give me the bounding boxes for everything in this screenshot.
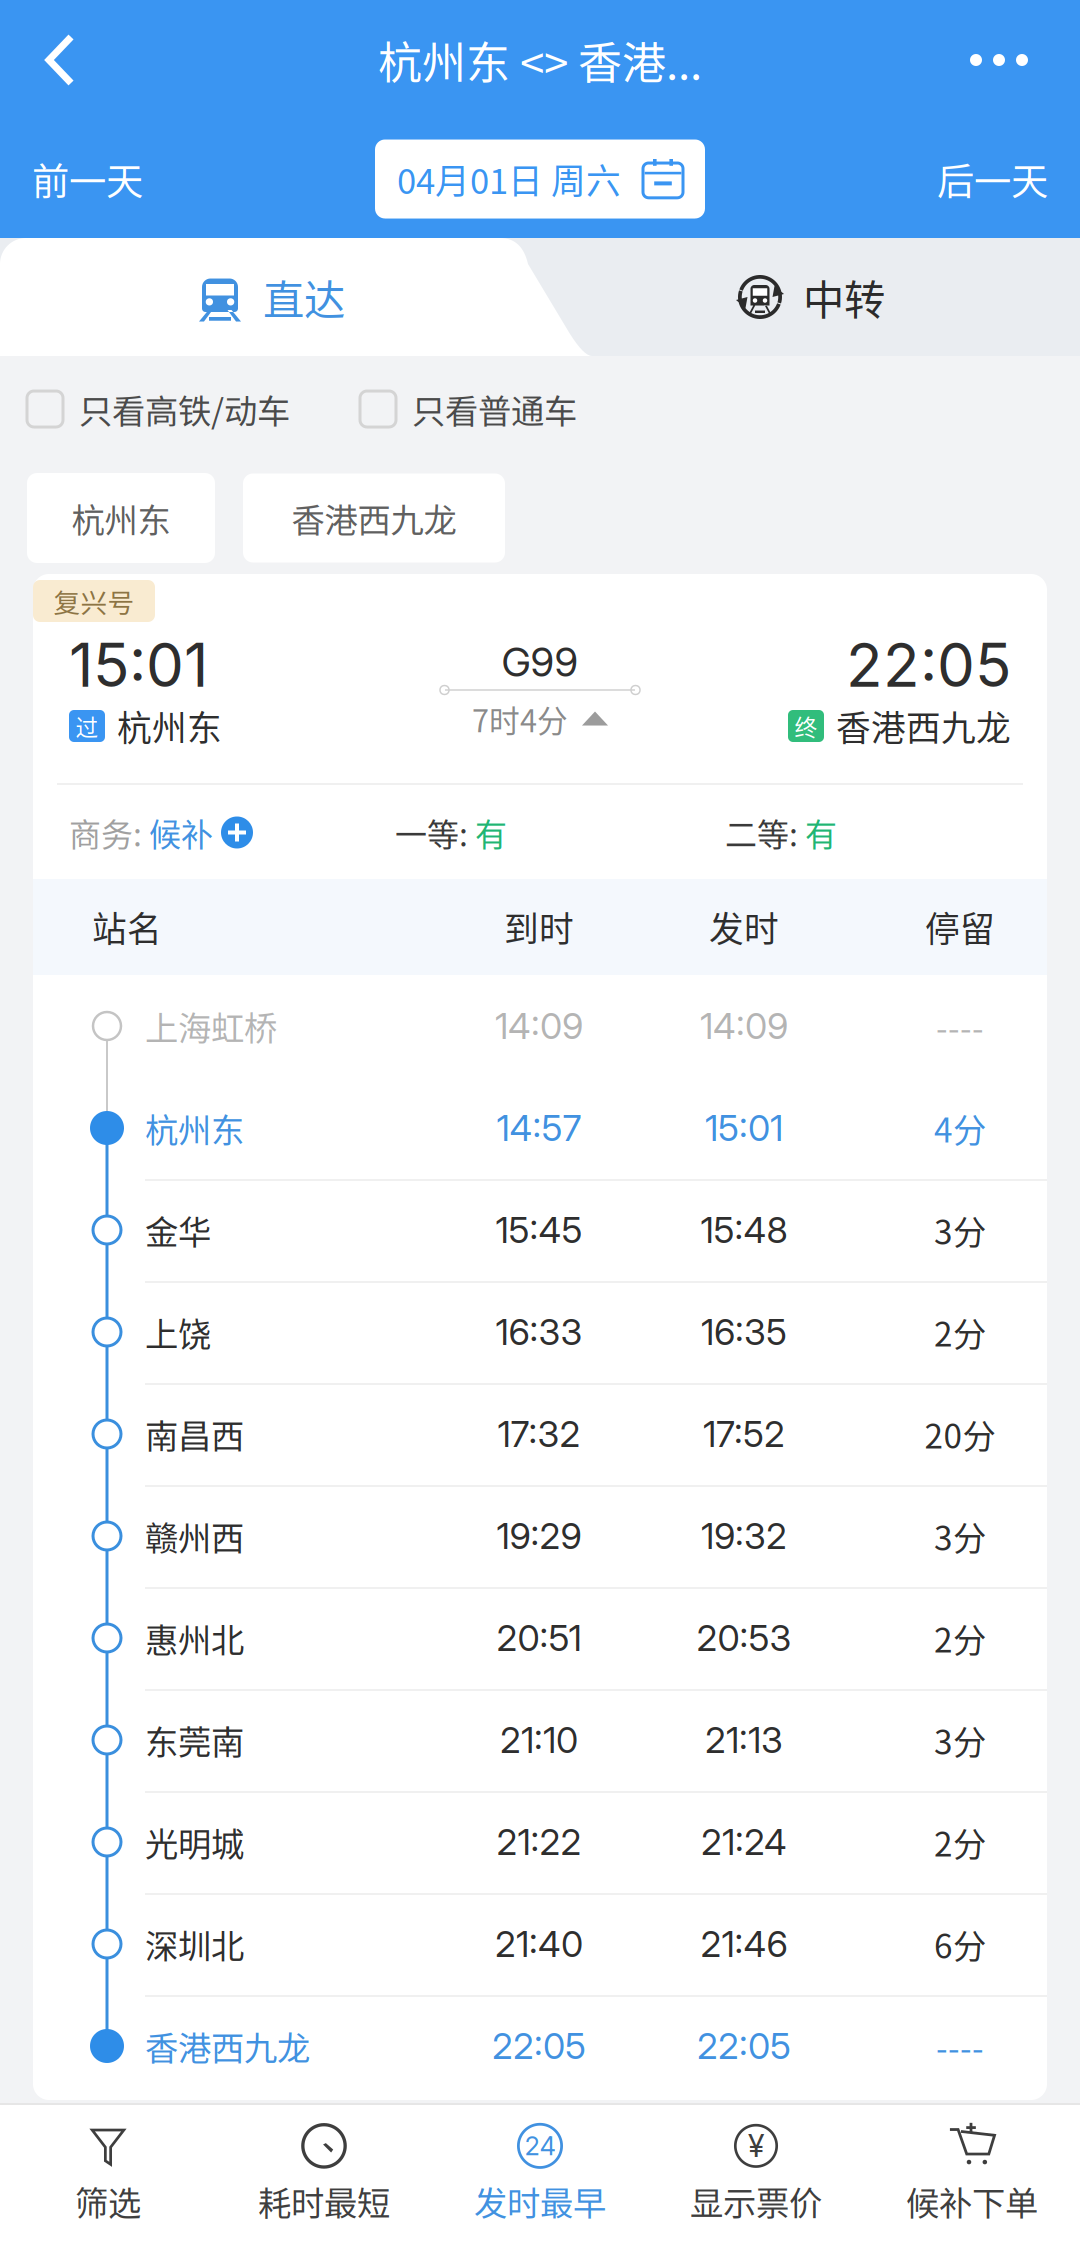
staticText: 14:09: [700, 1004, 788, 1048]
staticText: 香港西九龙: [145, 2022, 310, 2070]
staticText: 20:51: [496, 1616, 581, 1660]
staticText: 显示票价: [690, 2177, 822, 2225]
staticText: 一等:: [395, 809, 475, 856]
staticText: 杭州东 <> 香港...: [378, 28, 702, 92]
button[interactable]: 候补下单: [864, 2107, 1080, 2239]
staticText: 杭州东: [117, 701, 222, 751]
staticText: 有: [805, 809, 837, 856]
staticText: 3分: [934, 1512, 986, 1560]
staticText: 惠州北: [145, 1614, 244, 1662]
staticText: 光明城: [145, 1818, 244, 1866]
staticText: 前一天: [32, 152, 143, 206]
staticText: 停留: [925, 902, 995, 952]
staticText: 15:01: [69, 629, 208, 701]
staticText: 04月01日 周六: [397, 154, 621, 204]
staticText: 深圳北: [145, 1920, 244, 1968]
staticText: 只看高铁/动车: [79, 385, 290, 433]
staticText: 杭州东: [145, 1104, 244, 1152]
staticText: 香港西九龙: [291, 494, 456, 542]
button[interactable]: 只看普通车: [360, 356, 577, 462]
staticText: 复兴号: [53, 582, 134, 620]
staticText: 中转: [803, 267, 885, 327]
staticText: 21:40: [495, 1922, 583, 1966]
staticText: 候补: [149, 809, 213, 856]
staticText: 上饶: [145, 1308, 211, 1356]
button[interactable]: 耗时最短: [216, 2107, 432, 2239]
staticText: 15:48: [700, 1208, 787, 1252]
button[interactable]: Back: [0, 0, 120, 120]
staticText: 东莞南: [145, 1716, 244, 1764]
button[interactable]: 后一天: [0, 120, 1048, 238]
staticText: 香港西九龙: [836, 701, 1011, 751]
staticText: 15:01: [705, 1106, 783, 1150]
button[interactable]: 只看高铁/动车: [0, 356, 290, 462]
button[interactable]: 04月01日 周六: [0, 120, 1080, 238]
staticText: 17:32: [497, 1412, 580, 1456]
button[interactable]: ¥: [648, 2107, 864, 2239]
staticText: 21:24: [701, 1820, 787, 1864]
button[interactable]: 香港西九龙: [243, 473, 505, 562]
button[interactable]: 筛选: [0, 2107, 216, 2239]
staticText: 21:13: [705, 1718, 783, 1762]
staticText: 二等:: [725, 809, 805, 856]
staticText: 14:09: [495, 1004, 583, 1048]
staticText: 22:05: [492, 2024, 586, 2068]
staticText: 22:05: [846, 629, 1011, 701]
button[interactable]: 直达: [0, 238, 540, 356]
staticText: G99: [501, 638, 578, 686]
staticText: 16:33: [495, 1310, 582, 1354]
staticText: 24: [524, 2130, 555, 2161]
button[interactable]: 前一天: [0, 120, 192, 238]
staticText: 2分: [934, 1614, 986, 1662]
staticText: 21:22: [496, 1820, 581, 1864]
staticText: 20分: [924, 1410, 995, 1458]
staticText: 21:10: [500, 1718, 578, 1762]
staticText: 发时: [709, 902, 779, 952]
staticText: 过: [75, 710, 98, 742]
staticText: 发时最早: [474, 2177, 606, 2225]
staticText: 站名: [92, 902, 162, 952]
staticText: 候补下单: [906, 2177, 1038, 2225]
button[interactable]: 中转: [540, 238, 1080, 356]
staticText: 16:35: [701, 1310, 787, 1354]
staticText: 22:05: [697, 2024, 791, 2068]
button[interactable]: 杭州东: [27, 473, 215, 563]
staticText: 2分: [934, 1308, 986, 1356]
staticText: 3分: [934, 1716, 986, 1764]
staticText: 终: [794, 710, 817, 742]
button[interactable]: 24: [432, 2107, 648, 2239]
staticText: 只看普通车: [412, 385, 577, 433]
staticText: 直达: [263, 267, 345, 327]
staticText: 17:52: [703, 1412, 785, 1456]
staticText: 7时4分: [472, 697, 568, 741]
staticText: 6分: [934, 1920, 986, 1968]
staticText: 14:57: [496, 1106, 581, 1150]
staticText: 19:32: [701, 1514, 787, 1558]
staticText: 上海虹桥: [145, 1002, 277, 1050]
staticText: 2分: [934, 1818, 986, 1866]
staticText: 杭州东: [71, 494, 170, 542]
staticText: ¥: [748, 2127, 764, 2164]
staticText: 筛选: [75, 2177, 141, 2225]
staticText: 19:29: [496, 1514, 581, 1558]
staticText: 有: [475, 809, 507, 856]
staticText: 4分: [934, 1104, 986, 1152]
staticText: 商务:: [69, 809, 149, 856]
staticText: 20:53: [696, 1616, 791, 1660]
staticText: ----: [936, 1002, 984, 1050]
staticText: 15:45: [495, 1208, 582, 1252]
staticText: 后一天: [937, 152, 1048, 206]
staticText: 赣州西: [145, 1512, 244, 1560]
staticText: 3分: [934, 1206, 986, 1254]
staticText: 到时: [504, 902, 574, 952]
staticText: ----: [936, 2022, 984, 2070]
staticText: 金华: [145, 1206, 211, 1254]
staticText: 耗时最短: [258, 2177, 390, 2225]
button[interactable]: More: [970, 0, 1080, 120]
staticText: 南昌西: [145, 1410, 244, 1458]
staticText: 21:46: [700, 1922, 787, 1966]
